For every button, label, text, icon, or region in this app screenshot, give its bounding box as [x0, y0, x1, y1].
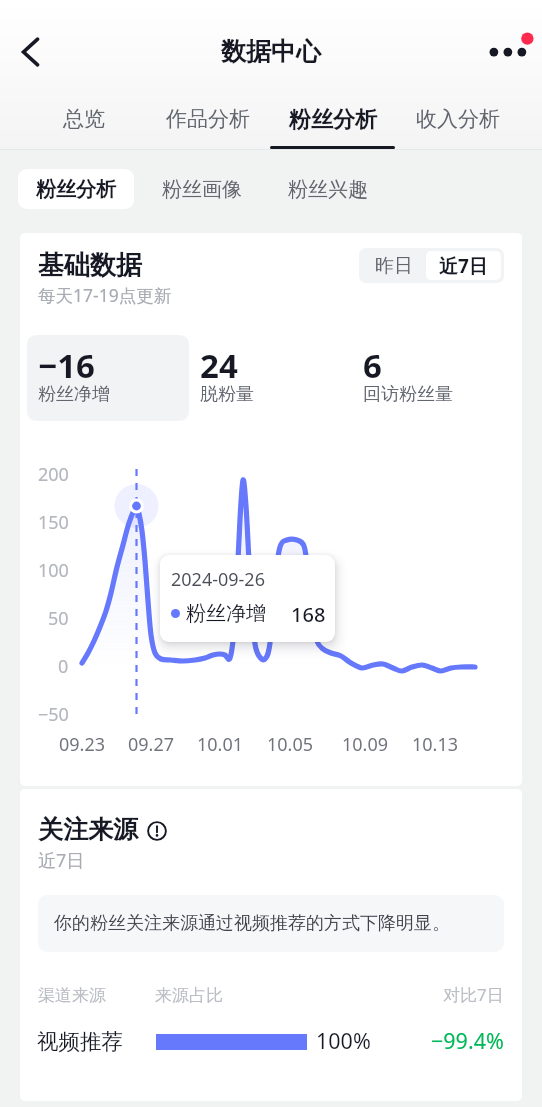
staticText: 10.05 — [267, 732, 314, 754]
button[interactable]: −16 — [27, 335, 189, 421]
staticText: 基础数据 — [38, 249, 142, 282]
staticText: 渠道来源 — [38, 985, 106, 1006]
staticText: 09.27 — [128, 732, 175, 754]
staticText: 脱粉量 — [200, 383, 254, 406]
button[interactable]: 收入分析 — [395, 98, 520, 150]
staticText: 粉丝分析 — [36, 177, 116, 202]
button[interactable]: 粉丝兴趣 — [270, 169, 386, 209]
staticText: 来源占比 — [155, 985, 223, 1006]
staticText: 你的粉丝关注来源通过视频推荐的方式下降明显。 — [54, 912, 450, 935]
button[interactable]: Back — [8, 29, 54, 75]
staticText: 视频推荐 — [37, 1028, 123, 1055]
staticText: 168 — [291, 601, 326, 628]
staticText: 每天17-19点更新 — [38, 283, 172, 307]
staticText: 100 — [38, 558, 69, 580]
button[interactable]: Info — [147, 821, 167, 841]
button[interactable]: 粉丝分析 — [270, 98, 395, 150]
staticText: 10.13 — [412, 732, 459, 754]
staticText: 200 — [38, 462, 69, 484]
staticText: 收入分析 — [416, 106, 500, 132]
button[interactable]: 粉丝画像 — [144, 169, 260, 209]
staticText: 10.09 — [342, 732, 389, 754]
staticText: −50 — [38, 702, 69, 724]
staticText: 粉丝净增 — [38, 383, 110, 406]
button[interactable]: 粉丝分析 — [18, 169, 134, 209]
staticText: 近7日 — [38, 848, 85, 873]
staticText: 近7日 — [439, 253, 488, 279]
staticText: 粉丝兴趣 — [288, 177, 368, 202]
staticText: 6 — [363, 343, 382, 388]
staticText: 对比7日 — [443, 983, 504, 1006]
button[interactable]: More options — [481, 23, 537, 79]
staticText: 50 — [48, 606, 69, 628]
staticText: 0 — [58, 654, 69, 676]
staticText: 2024-09-26 — [171, 567, 265, 592]
staticText: 数据中心 — [221, 36, 321, 67]
staticText: 粉丝分析 — [289, 106, 377, 134]
staticText: 10.01 — [197, 732, 244, 754]
staticText: 粉丝净增 — [186, 601, 266, 626]
button[interactable]: 24 — [189, 335, 352, 421]
button[interactable]: 总览 — [22, 98, 146, 150]
staticText: 09.23 — [59, 732, 106, 754]
staticText: 100% — [316, 1026, 371, 1055]
staticText: −99.4% — [431, 1026, 504, 1055]
staticText: 关注来源 — [38, 814, 138, 845]
staticText: 150 — [38, 510, 69, 532]
button[interactable]: 6 — [352, 335, 515, 421]
button[interactable]: 作品分析 — [146, 98, 270, 150]
staticText: 回访粉丝量 — [363, 383, 453, 406]
button[interactable]: 近7日 — [426, 251, 501, 280]
staticText: 作品分析 — [166, 106, 250, 132]
staticText: 总览 — [63, 106, 105, 132]
staticText: 24 — [200, 343, 238, 388]
staticText: −16 — [38, 343, 95, 388]
staticText: 昨日 — [375, 254, 413, 278]
button[interactable]: 昨日 — [362, 251, 426, 280]
staticText: 粉丝画像 — [162, 177, 242, 202]
